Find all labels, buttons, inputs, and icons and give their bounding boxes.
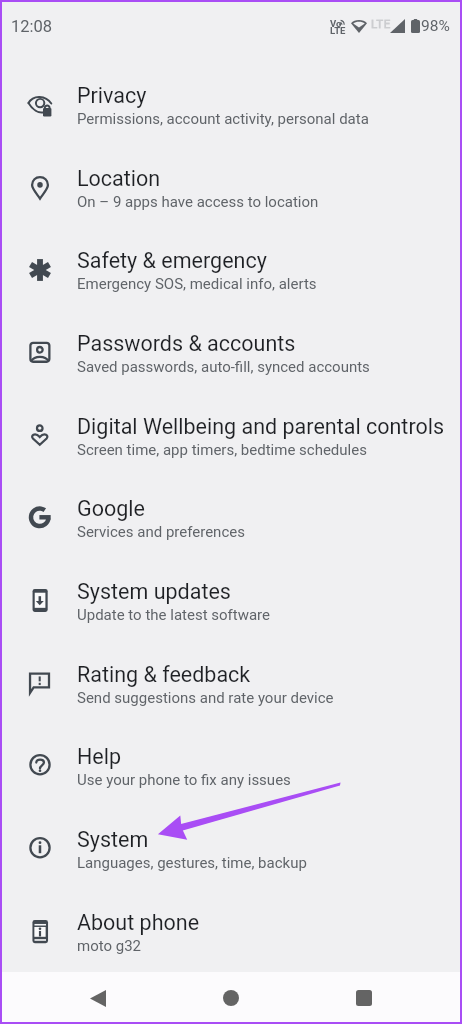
staticText: Update to the latest software [77, 606, 271, 624]
button[interactable]: System [0, 808, 462, 891]
staticText: Permissions, account activity, personal … [77, 110, 369, 128]
button[interactable]: Home [205, 972, 257, 1024]
staticText: Passwords & accounts [77, 331, 296, 356]
staticText: Saved passwords, auto-fill, synced accou… [77, 358, 370, 376]
staticText: About phone [77, 910, 200, 935]
staticText: moto g32 [77, 937, 142, 955]
staticText: System [77, 827, 149, 852]
button[interactable]: Google [0, 477, 462, 560]
staticText: Emergency SOS, medical info, alerts [77, 275, 317, 293]
staticText: Rating & feedback [77, 662, 251, 687]
button[interactable]: Rating & feedback [0, 643, 462, 726]
staticText: On – 9 apps have access to location [77, 193, 319, 211]
staticText: 98% [421, 17, 450, 35]
staticText: Screen time, app timers, bedtime schedul… [77, 441, 367, 459]
button[interactable]: Digital Wellbeing and parental controls [0, 395, 462, 478]
button[interactable]: Privacy [0, 64, 462, 147]
button[interactable]: System updates [0, 560, 462, 643]
button[interactable]: Location [0, 147, 462, 230]
staticText: Languages, gestures, time, backup [77, 854, 307, 872]
button[interactable]: Passwords & accounts [0, 312, 462, 395]
staticText: Safety & emergency [77, 248, 267, 273]
staticText: Help [77, 744, 122, 769]
button[interactable]: About phone [0, 891, 462, 974]
staticText: Privacy [77, 83, 147, 108]
staticText: LTE [371, 17, 391, 30]
staticText: Google [77, 496, 145, 521]
staticText: System updates [77, 579, 231, 604]
staticText: 12:08 [11, 17, 53, 36]
staticText: Services and preferences [77, 523, 245, 541]
staticText: Vo [330, 18, 342, 29]
staticText: Digital Wellbeing and parental controls [77, 414, 445, 439]
staticText: Location [77, 166, 161, 191]
staticText: Use your phone to fix any issues [77, 771, 291, 789]
button[interactable]: Help [0, 725, 462, 808]
staticText: Send suggestions and rate your device [77, 689, 334, 707]
button[interactable]: Recent apps [338, 972, 390, 1024]
staticText: LTE [330, 25, 346, 36]
button[interactable]: Safety & emergency [0, 229, 462, 312]
button[interactable]: Back [72, 972, 124, 1024]
